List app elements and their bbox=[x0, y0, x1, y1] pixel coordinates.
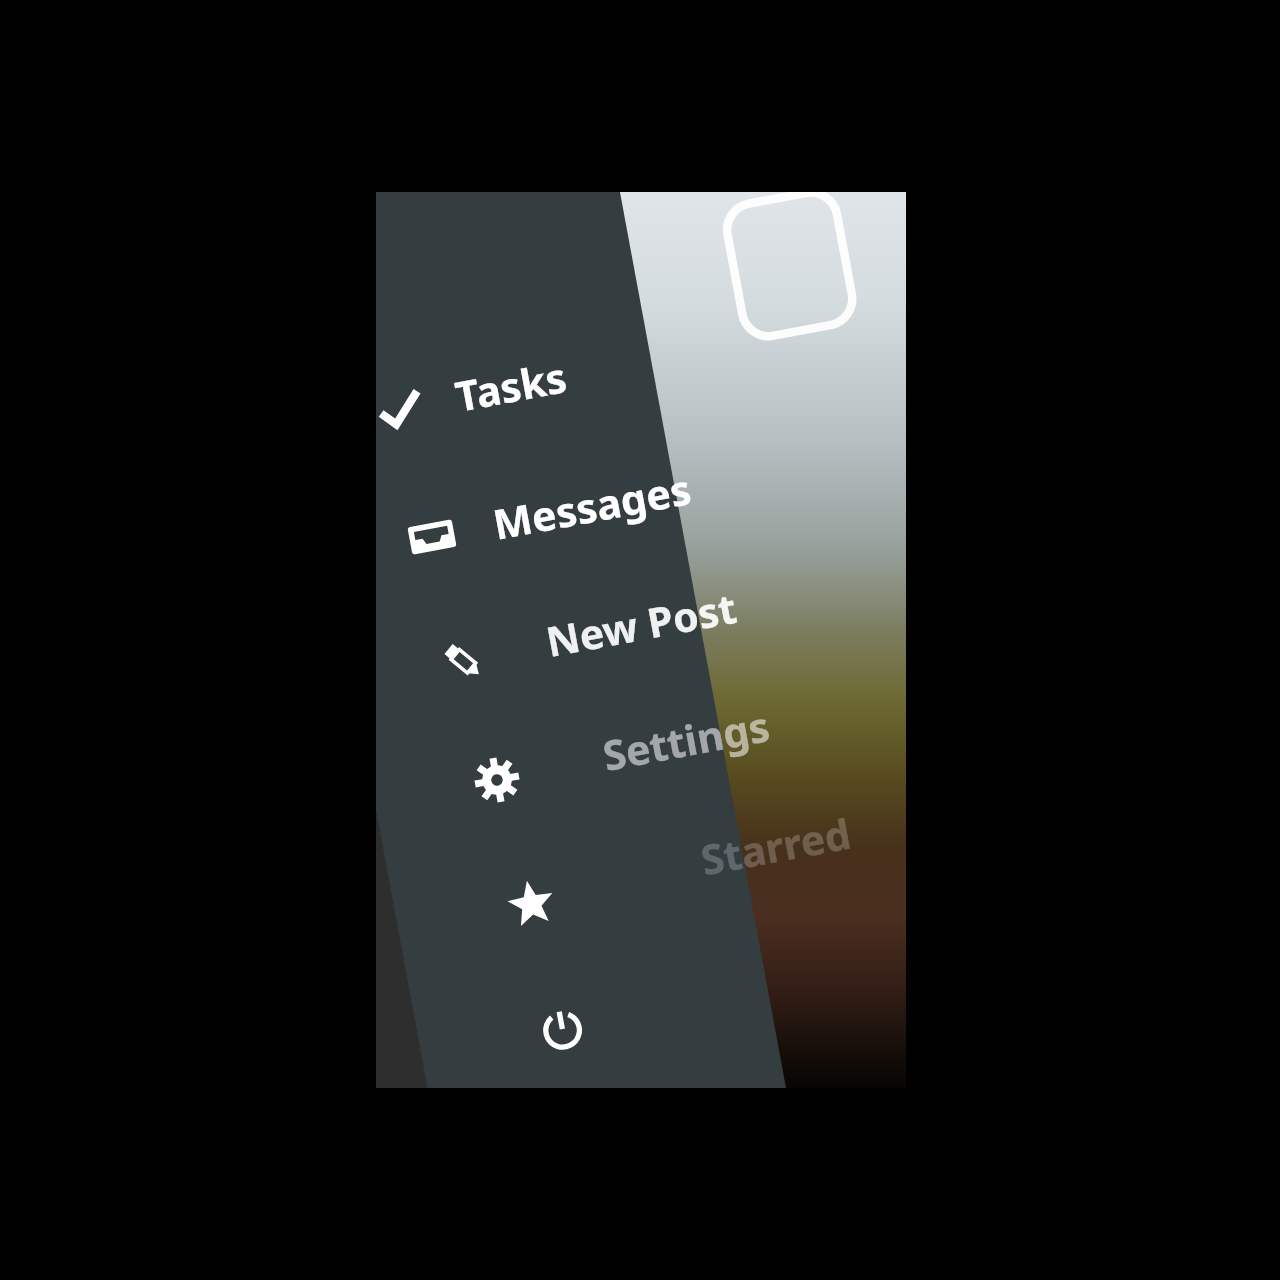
staticText: Messages bbox=[489, 460, 695, 552]
button[interactable]: Settings bbox=[467, 750, 527, 810]
button[interactable]: Starred bbox=[501, 873, 561, 933]
button[interactable]: Messages bbox=[489, 460, 695, 552]
button[interactable]: Tasks bbox=[370, 380, 430, 440]
button[interactable]: Starred bbox=[696, 805, 856, 887]
button[interactable]: Power off bbox=[532, 997, 592, 1057]
button[interactable]: Tasks bbox=[451, 348, 571, 424]
staticText: New Post bbox=[541, 579, 741, 669]
button[interactable]: Messages bbox=[402, 507, 462, 567]
button[interactable]: New Post bbox=[433, 631, 493, 691]
button[interactable]: Settings bbox=[598, 697, 775, 783]
staticText: Starred bbox=[696, 805, 856, 887]
staticText: Tasks bbox=[451, 348, 571, 424]
button[interactable]: New Post bbox=[541, 579, 741, 669]
staticText: Settings bbox=[598, 697, 775, 783]
